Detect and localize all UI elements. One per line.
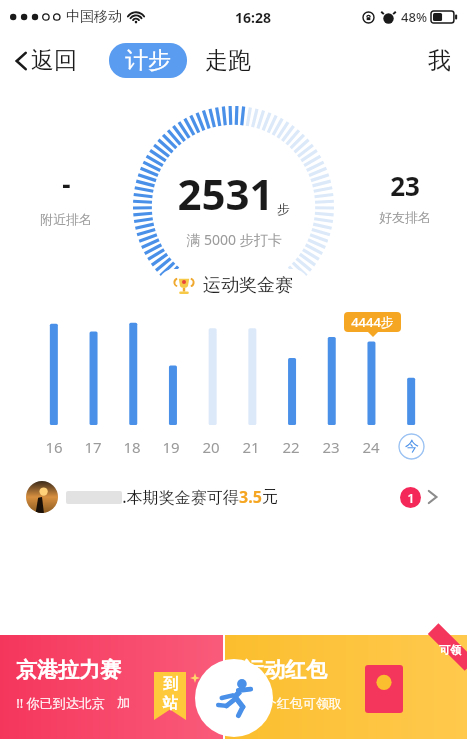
staticText: 中国移动	[66, 8, 122, 26]
staticText: 运动红包	[243, 657, 327, 683]
staticText: 满 5000 步打卡	[186, 230, 282, 249]
button[interactable]: 计步	[109, 43, 187, 78]
button[interactable]: 我	[424, 42, 455, 79]
staticText: 17	[84, 437, 102, 457]
staticText: 运动奖金赛	[203, 274, 293, 297]
staticText: 24	[362, 437, 380, 457]
staticText: 23	[390, 168, 420, 203]
staticText: 返回	[31, 46, 77, 75]
staticText: .本期奖金赛可得	[122, 486, 239, 508]
staticText: 步	[277, 201, 290, 217]
button[interactable]: -	[34, 160, 98, 233]
button[interactable]: 返回	[12, 42, 79, 79]
staticText: 20	[202, 437, 220, 457]
staticText: 加	[117, 694, 130, 710]
staticText: 好友排名	[379, 209, 431, 225]
staticText: 可领	[439, 643, 461, 657]
staticText: 16:28	[235, 8, 271, 27]
staticText: 附近排名	[40, 211, 92, 227]
button[interactable]: 23	[373, 162, 437, 231]
staticText: 计步	[125, 46, 171, 75]
button[interactable]: .本期奖金赛可得	[18, 475, 449, 519]
staticText: 21	[242, 437, 260, 457]
button[interactable]: 今	[398, 433, 425, 460]
staticText: 站	[163, 694, 178, 713]
staticText: 京港拉力赛	[16, 657, 121, 683]
staticText: 48%	[401, 8, 427, 26]
staticText: 19	[162, 437, 180, 457]
staticText: 我	[428, 46, 451, 75]
staticText: 今	[405, 438, 419, 456]
button[interactable]: 运动红包	[225, 635, 467, 739]
staticText: 有1个红包可领取	[243, 694, 342, 712]
staticText: 2531	[177, 165, 274, 222]
staticText: !! 你已到达北京	[16, 694, 105, 712]
staticText: 18	[123, 437, 141, 457]
staticText: 4444步	[351, 313, 394, 331]
staticText: -	[62, 166, 71, 201]
staticText: 元	[262, 487, 278, 507]
staticText: 到	[163, 675, 178, 694]
staticText: 16	[45, 437, 63, 457]
button[interactable]: 走跑	[201, 42, 255, 79]
button[interactable]: 京港拉力赛	[0, 635, 223, 739]
staticText: 23	[322, 437, 340, 457]
staticText: 走跑	[205, 46, 251, 75]
button[interactable]: Start running	[195, 659, 273, 737]
button[interactable]: 运动奖金赛	[158, 269, 309, 302]
staticText: 3.5	[239, 486, 262, 508]
staticText: 22	[282, 437, 300, 457]
staticText: 1	[407, 489, 415, 507]
